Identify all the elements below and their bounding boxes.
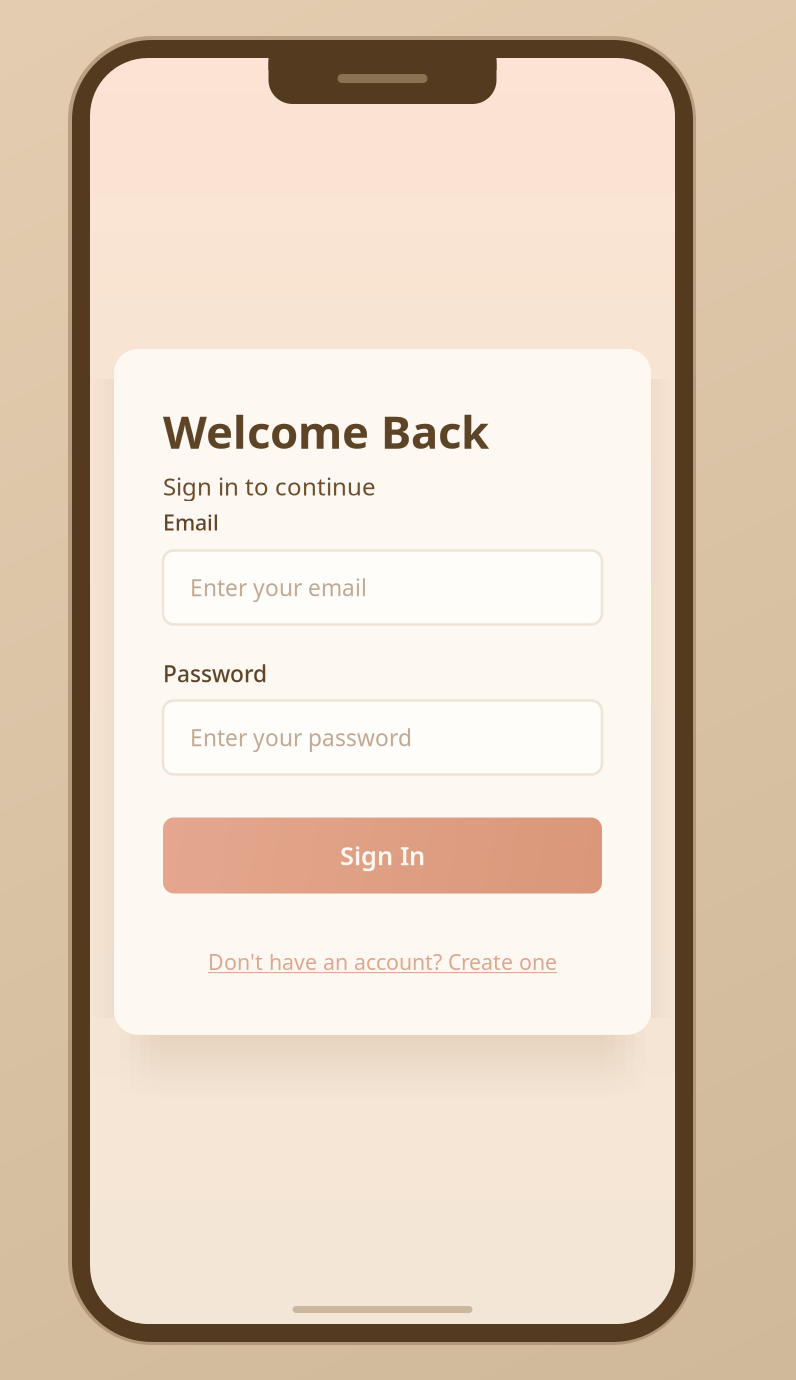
staticText: Enter your email [190,572,367,602]
button[interactable]: Enter your password [163,700,602,774]
staticText: Sign In [340,839,425,872]
button[interactable]: Don't have an account? Create one [163,947,602,976]
staticText: Email [163,508,219,536]
staticText: Welcome Back [163,401,489,461]
staticText: Enter your password [190,722,412,753]
button[interactable]: Enter your email [163,550,602,624]
staticText: Password [163,658,267,688]
button[interactable]: Sign In [163,817,602,893]
staticText: Sign in to continue [163,470,376,502]
staticText: Don't have an account? Create one [208,947,557,976]
